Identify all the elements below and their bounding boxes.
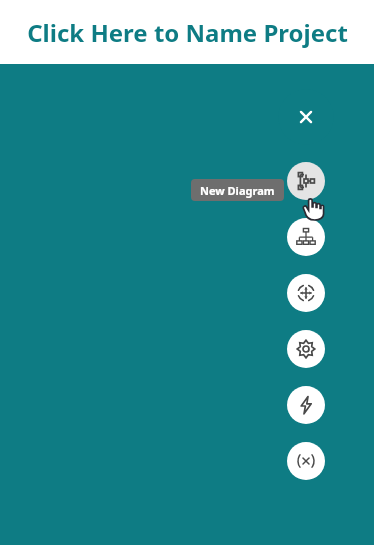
staticText: New Diagram xyxy=(200,183,275,198)
button[interactable]: New Diagram xyxy=(287,162,325,200)
button[interactable]: Settings xyxy=(287,330,325,368)
staticText: Click Here to Name Project xyxy=(27,16,348,49)
button[interactable]: Variables xyxy=(287,442,325,480)
button[interactable]: Click Here to Name Project xyxy=(0,0,374,64)
button[interactable]: Close menu xyxy=(278,89,334,145)
button[interactable]: Hierarchy xyxy=(287,218,325,256)
button[interactable]: Actions xyxy=(287,386,325,424)
button[interactable]: Move xyxy=(287,274,325,312)
